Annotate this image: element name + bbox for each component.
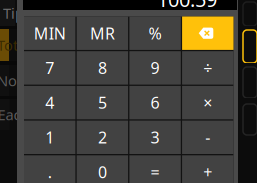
staticText: 8 (98, 57, 107, 78)
button[interactable]: 5 (77, 86, 128, 119)
button[interactable]: 0 (77, 155, 128, 183)
staticText: % (149, 23, 162, 44)
button[interactable]: ÷ (182, 51, 233, 85)
button[interactable]: Delete (182, 16, 233, 50)
staticText: 4 (45, 92, 54, 113)
staticText: 9 (151, 57, 160, 78)
staticText: = (151, 161, 160, 183)
button[interactable]: MR (77, 16, 128, 50)
staticText: 3 (151, 127, 160, 148)
staticText: - (205, 127, 210, 148)
button[interactable]: 3 (129, 121, 181, 154)
staticText: MR (90, 23, 115, 44)
button[interactable]: . (24, 155, 75, 183)
staticText: 6 (151, 92, 160, 113)
staticText: Tip (3, 3, 24, 23)
staticText: 1 (45, 127, 54, 148)
button[interactable]: 2 (77, 121, 128, 154)
button[interactable]: 1 (24, 121, 75, 154)
staticText: MIN (34, 23, 66, 44)
staticText: 7 (45, 57, 54, 78)
staticText: + (203, 161, 212, 183)
staticText: × (203, 92, 212, 113)
staticText: 100.59 (157, 0, 217, 13)
button[interactable]: MIN (24, 16, 75, 50)
button[interactable]: + (182, 155, 233, 183)
button[interactable]: 4 (24, 86, 75, 119)
staticText: Total (0, 35, 30, 55)
staticText: ÷ (203, 57, 212, 78)
button[interactable]: 6 (129, 86, 181, 119)
staticText: 5 (98, 92, 107, 113)
staticText: 0 (98, 161, 107, 183)
staticText: Note (0, 71, 30, 90)
button[interactable]: 8 (77, 51, 128, 85)
button[interactable]: 7 (24, 51, 75, 85)
button[interactable]: % (129, 16, 181, 50)
button[interactable]: 9 (129, 51, 181, 85)
staticText: . (48, 161, 52, 183)
staticText: Each (0, 105, 29, 124)
staticText: 2 (98, 127, 107, 148)
button[interactable]: × (182, 86, 233, 119)
button[interactable]: - (182, 121, 233, 154)
button[interactable]: = (129, 155, 181, 183)
